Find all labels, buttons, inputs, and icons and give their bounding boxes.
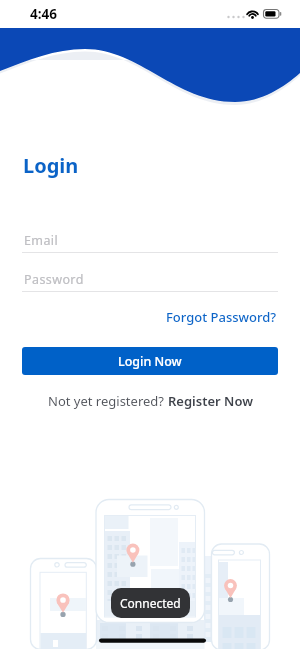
staticText: Login Now — [118, 353, 182, 370]
button[interactable]: Password — [22, 269, 278, 292]
staticText: Not yet registered? — [48, 392, 168, 410]
staticText: Connected — [120, 595, 181, 611]
staticText: 4:46 — [30, 5, 57, 23]
button[interactable]: Register Now — [168, 392, 253, 410]
button[interactable]: Email — [22, 230, 278, 253]
button[interactable]: Forgot Password? — [166, 308, 277, 326]
staticText: Login — [23, 152, 79, 179]
button[interactable]: Login Now — [22, 347, 278, 375]
staticText: Email — [24, 232, 59, 249]
staticText: Register Now — [168, 392, 253, 410]
staticText: Forgot Password? — [166, 308, 277, 326]
staticText: Password — [24, 271, 84, 288]
